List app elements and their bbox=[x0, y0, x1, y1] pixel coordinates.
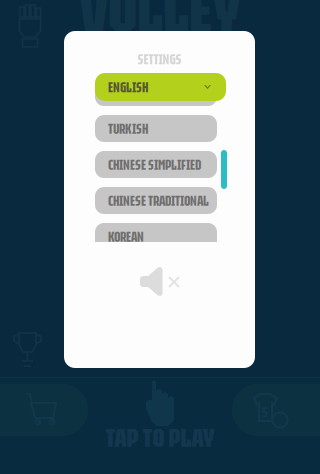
button[interactable]: CHINESE SIMPLIFIED bbox=[95, 151, 217, 178]
staticText: CHINESE TRADITIONAL bbox=[108, 191, 209, 210]
staticText: ENGLISH bbox=[108, 77, 148, 97]
staticText: TURKISH bbox=[108, 119, 148, 138]
staticText: TAP TO PLAY bbox=[105, 421, 214, 454]
button[interactable]: Toggle sound bbox=[140, 267, 181, 296]
staticText: KOREAN bbox=[108, 227, 144, 246]
button[interactable]: ENGLISH bbox=[95, 73, 226, 101]
button[interactable]: TURKISH bbox=[95, 115, 217, 142]
staticText: CHINESE SIMPLIFIED bbox=[108, 155, 201, 174]
staticText: ENGLISH bbox=[108, 83, 148, 102]
staticText: 5 bbox=[262, 404, 268, 421]
staticText: VOLLEY bbox=[79, 0, 241, 51]
button[interactable]: CHINESE TRADITIONAL bbox=[95, 187, 217, 214]
button[interactable]: KOREAN bbox=[95, 223, 217, 250]
button[interactable]: ENGLISH bbox=[95, 79, 217, 106]
staticText: SETTINGS bbox=[137, 49, 181, 69]
